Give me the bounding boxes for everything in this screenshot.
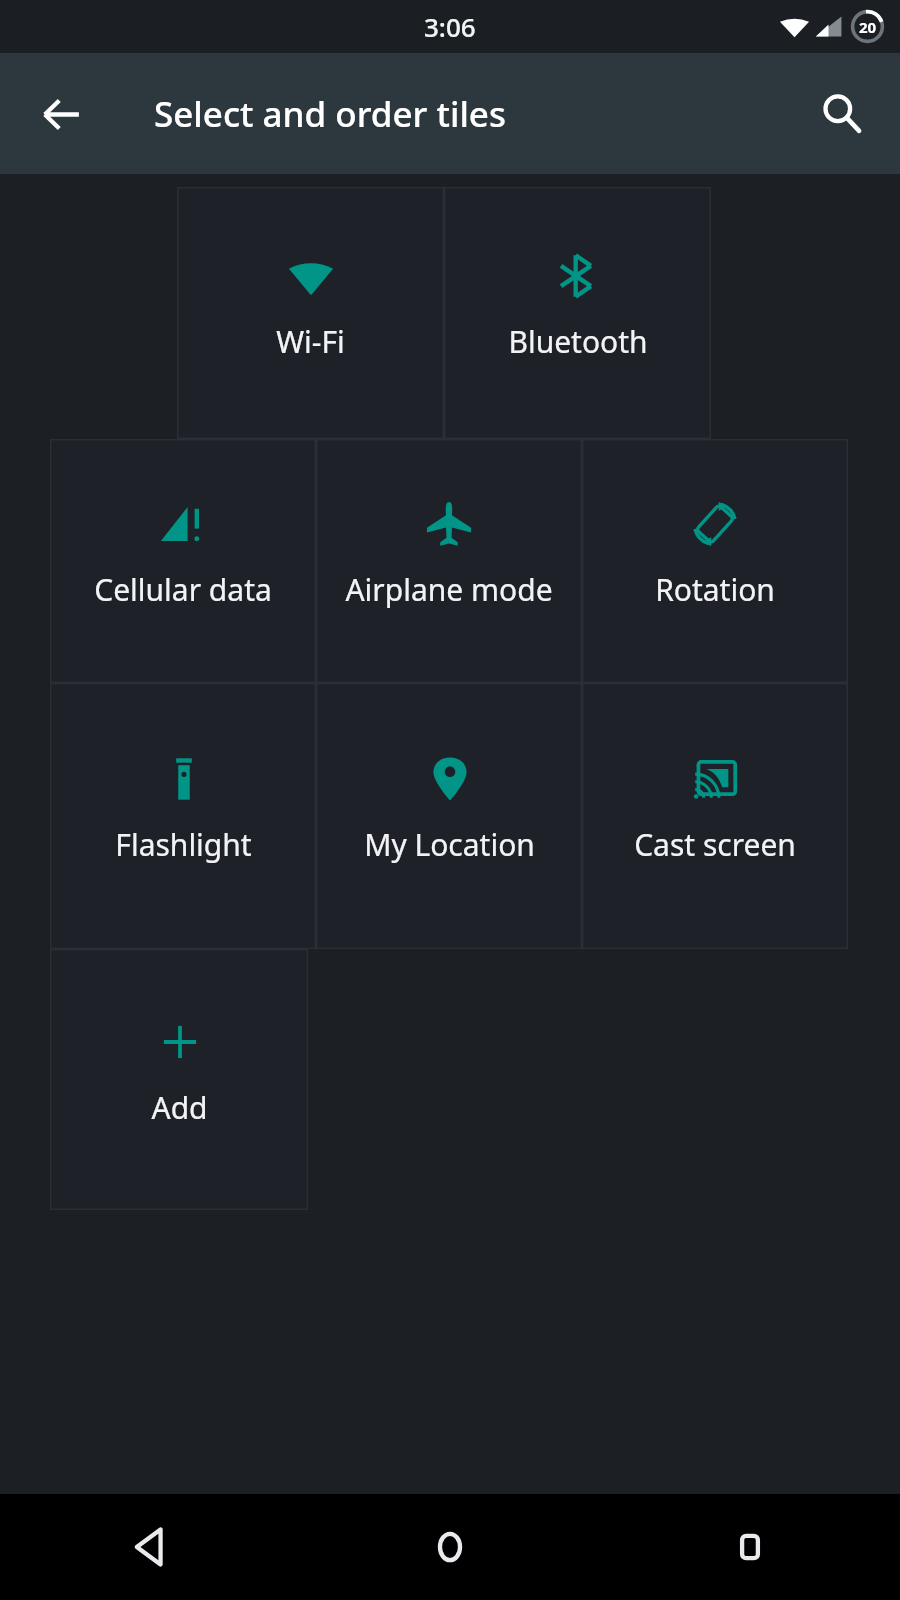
- staticText: Bluetooth: [508, 321, 648, 362]
- staticText: Cast screen: [634, 824, 796, 865]
- button[interactable]: Add: [50, 949, 308, 1210]
- button[interactable]: Flashlight: [50, 683, 316, 949]
- button[interactable]: Cast screen: [582, 683, 848, 949]
- button[interactable]: Rotation: [582, 439, 848, 683]
- staticText: Wi-Fi: [276, 321, 345, 362]
- button[interactable]: Home: [300, 1494, 600, 1600]
- button[interactable]: Back: [24, 77, 98, 151]
- staticText: 3:06: [424, 9, 476, 44]
- button[interactable]: Bluetooth: [444, 187, 711, 439]
- staticText: Add: [151, 1087, 208, 1128]
- staticText: My Location: [364, 824, 535, 865]
- button[interactable]: Back: [0, 1494, 300, 1600]
- button[interactable]: Wi-Fi: [177, 187, 444, 439]
- button[interactable]: Recents: [600, 1494, 900, 1600]
- staticText: Select and order tiles: [154, 90, 506, 138]
- button[interactable]: Cellular data: [50, 439, 316, 683]
- staticText: Flashlight: [115, 824, 252, 865]
- button[interactable]: My Location: [316, 683, 582, 949]
- staticText: Airplane mode: [345, 569, 553, 610]
- button[interactable]: Search: [804, 77, 878, 151]
- staticText: Rotation: [655, 569, 775, 610]
- button[interactable]: Airplane mode: [316, 439, 582, 683]
- staticText: 20: [859, 17, 877, 37]
- staticText: Cellular data: [94, 569, 272, 610]
